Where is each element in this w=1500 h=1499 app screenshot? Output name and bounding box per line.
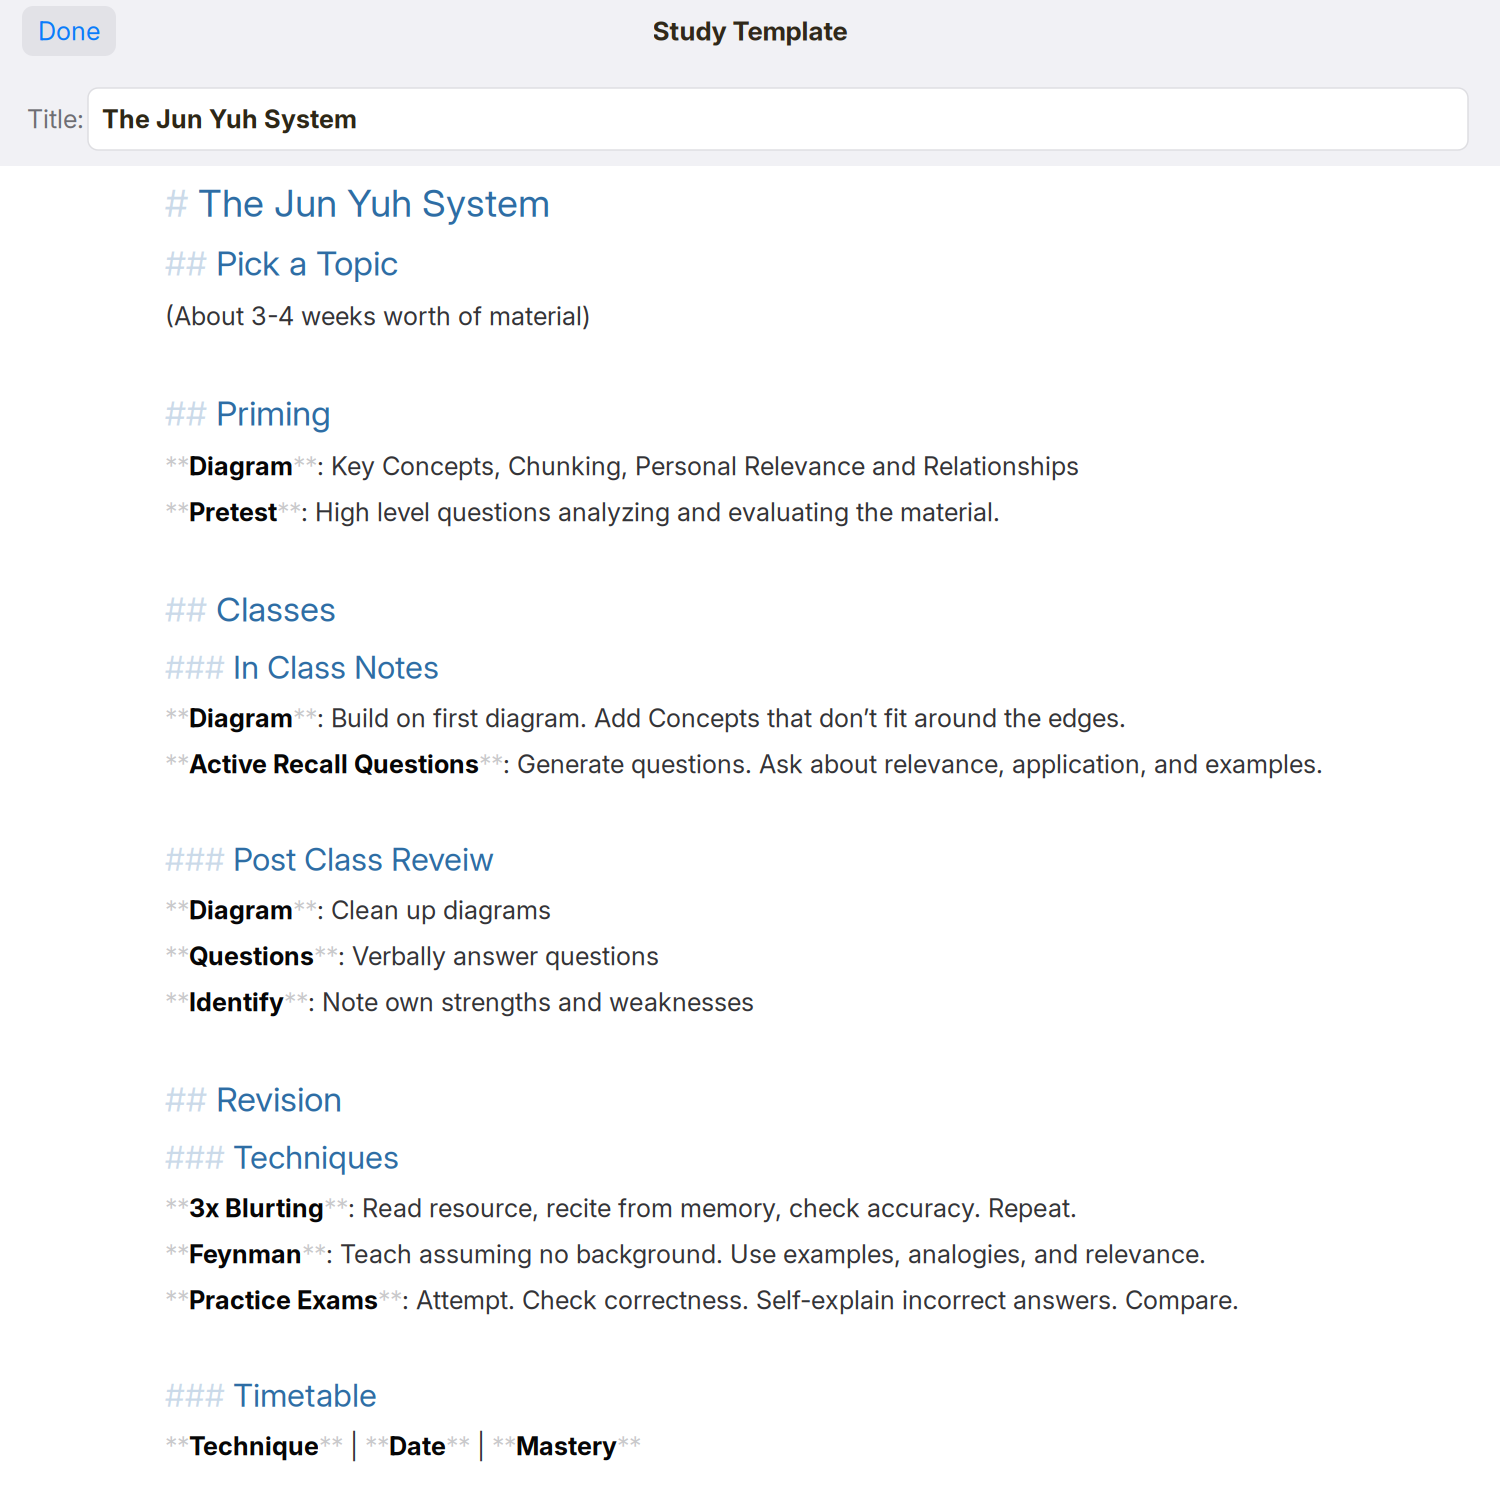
staticText: : Generate questions. Ask about relevanc… xyxy=(503,749,1323,779)
staticText: Identify xyxy=(189,987,284,1017)
staticText: ## xyxy=(165,392,207,434)
staticText: ### xyxy=(165,1138,225,1176)
staticText: Questions xyxy=(189,941,314,971)
staticText: ** xyxy=(302,1239,326,1269)
staticText: ** xyxy=(446,1431,470,1461)
staticText: ** xyxy=(277,497,301,527)
staticText: ** xyxy=(165,497,189,527)
staticText: ** xyxy=(165,749,189,779)
staticText: Revision xyxy=(207,1078,342,1120)
staticText: ** xyxy=(365,1431,389,1461)
staticText: ** xyxy=(492,1431,516,1461)
staticText: Pretest xyxy=(189,497,277,527)
staticText: ** xyxy=(319,1431,343,1461)
staticText: The Jun Yuh System xyxy=(188,180,550,226)
staticText: ** xyxy=(617,1431,641,1461)
staticText: Techniques xyxy=(225,1138,399,1176)
staticText: ** xyxy=(293,451,317,481)
staticText: ### xyxy=(165,648,225,686)
staticText: ## xyxy=(165,588,207,630)
staticText: : Note own strengths and weaknesses xyxy=(308,987,754,1017)
staticText: ** xyxy=(284,987,308,1017)
staticText: ** xyxy=(165,451,189,481)
staticText: ** xyxy=(293,703,317,733)
staticText: Practice Exams xyxy=(189,1285,378,1315)
staticText: : Read resource, recite from memory, che… xyxy=(348,1193,1077,1223)
staticText: : Key Concepts, Chunking, Personal Relev… xyxy=(317,451,1079,481)
staticText: ** xyxy=(324,1193,348,1223)
staticText: ** xyxy=(165,1193,189,1223)
button[interactable]: The Jun Yuh System xyxy=(88,88,1468,150)
staticText: ** xyxy=(165,1239,189,1269)
staticText: Mastery xyxy=(516,1431,617,1461)
staticText: Timetable xyxy=(225,1376,377,1414)
staticText: Diagram xyxy=(189,703,293,733)
staticText: Technique xyxy=(189,1431,319,1461)
staticText: The Jun Yuh System xyxy=(102,104,357,134)
staticText: # xyxy=(165,180,188,226)
staticText: Classes xyxy=(207,588,336,630)
staticText: Diagram xyxy=(189,451,293,481)
staticText: : Teach assuming no background. Use exam… xyxy=(326,1239,1206,1269)
staticText: | xyxy=(470,1431,492,1461)
staticText: ### xyxy=(165,1376,225,1414)
staticText: : Attempt. Check correctness. Self-expla… xyxy=(402,1285,1239,1315)
button[interactable]: Done xyxy=(22,6,116,56)
staticText: | xyxy=(343,1431,365,1461)
staticText: ** xyxy=(165,1285,189,1315)
staticText: Active Recall Questions xyxy=(189,749,479,779)
staticText: In Class Notes xyxy=(225,648,439,686)
staticText: Done xyxy=(38,16,100,46)
staticText: ** xyxy=(165,703,189,733)
staticText: : Clean up diagrams xyxy=(317,895,551,925)
staticText: ** xyxy=(479,749,503,779)
staticText: Pick a Topic xyxy=(207,242,398,284)
staticText: ** xyxy=(378,1285,402,1315)
staticText: ### xyxy=(165,840,225,878)
staticText: Title: xyxy=(27,104,84,134)
staticText: ** xyxy=(165,895,189,925)
staticText: : Verbally answer questions xyxy=(338,941,659,971)
staticText: ** xyxy=(165,1431,189,1461)
staticText: ** xyxy=(165,987,189,1017)
staticText: ** xyxy=(293,895,317,925)
staticText: (About 3-4 weeks worth of material) xyxy=(165,301,591,331)
staticText: ## xyxy=(165,1078,207,1120)
staticText: Date xyxy=(389,1431,446,1461)
staticText: ** xyxy=(314,941,338,971)
staticText: Diagram xyxy=(189,895,293,925)
staticText: : High level questions analyzing and eva… xyxy=(301,497,1000,527)
staticText: : Build on first diagram. Add Concepts t… xyxy=(317,703,1126,733)
staticText: Study Template xyxy=(652,15,847,47)
staticText: Priming xyxy=(207,392,331,434)
staticText: 3x Blurting xyxy=(189,1193,324,1223)
staticText: ## xyxy=(165,242,207,284)
staticText: Feynman xyxy=(189,1239,302,1269)
staticText: Post Class Reveiw xyxy=(225,840,494,878)
staticText: ** xyxy=(165,941,189,971)
